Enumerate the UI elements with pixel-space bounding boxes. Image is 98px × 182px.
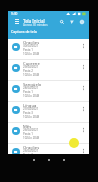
button[interactable]: More options <box>80 42 87 49</box>
staticText: 27/04/2021 <box>23 107 39 111</box>
button[interactable]: Open navigation menu <box>13 18 20 25</box>
button[interactable]: Recent apps <box>59 155 68 164</box>
button[interactable]: Sangüelo <box>8 81 89 102</box>
staticText: Mês <box>23 124 32 130</box>
staticText: Pasta 3 <box>23 111 33 115</box>
staticText: Pasta 2 <box>23 69 33 73</box>
staticText: Pasta 1 <box>23 48 33 52</box>
staticText: 25/04/2021 <box>23 149 39 153</box>
staticText: 1024 x 2048 <box>23 136 40 140</box>
button[interactable]: Send <box>68 18 76 26</box>
staticText: Cuprene <box>23 61 40 67</box>
button[interactable]: Cuprene <box>8 60 89 81</box>
button[interactable]: Home <box>44 155 53 164</box>
button[interactable]: Orações <box>8 144 89 154</box>
button[interactable]: More options <box>80 63 87 70</box>
staticText: Pasta 2 <box>23 153 33 154</box>
button[interactable]: More options <box>80 147 87 154</box>
button[interactable]: Orações <box>8 39 89 60</box>
button[interactable]: More options <box>80 105 87 112</box>
button[interactable]: Back <box>29 155 38 164</box>
staticText: 9:30 <box>11 12 18 16</box>
staticText: Acesso 30 minutos <box>23 23 48 27</box>
staticText: 1024 x 2048 <box>23 94 40 98</box>
staticText: Orações <box>23 145 40 151</box>
button[interactable]: Search <box>58 18 66 26</box>
staticText: 1024 x 2048 <box>23 115 40 119</box>
staticText: 1024 x 2048 <box>23 73 40 77</box>
staticText: Pasta 1 <box>23 132 33 136</box>
staticText: Sangüelo <box>23 82 42 88</box>
staticText: 28/04/2021 <box>23 86 39 90</box>
staticText: Pasta 1 <box>23 90 33 94</box>
staticText: 29/04/2021 <box>23 65 39 69</box>
staticText: 1024 x 2048 <box>23 52 40 56</box>
staticText: Captura de tela <box>11 29 37 34</box>
button[interactable]: Add <box>69 138 79 148</box>
staticText: Orações <box>23 40 40 46</box>
button[interactable]: Account <box>78 18 86 26</box>
button[interactable]: More options <box>80 84 87 91</box>
button[interactable]: More options <box>80 126 87 133</box>
staticText: 26/04/2021 <box>23 128 39 132</box>
button[interactable]: Língua <box>8 102 89 123</box>
staticText: Língua <box>23 103 37 109</box>
button[interactable]: Mês <box>8 123 89 144</box>
staticText: 30/04/2021 <box>23 44 39 48</box>
staticText: Tela Inicial <box>23 18 45 24</box>
